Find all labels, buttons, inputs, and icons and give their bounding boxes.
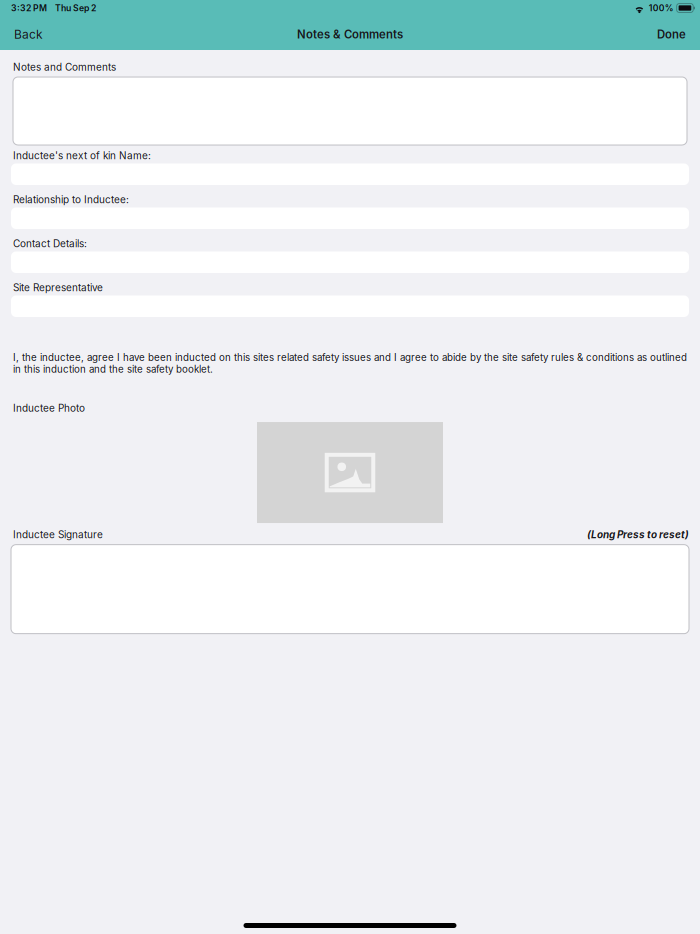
button[interactable]: Done — [643, 19, 700, 50]
button[interactable]: Inductee signature pad — [0, 545, 700, 634]
button[interactable]: Take inductee photo — [257, 422, 443, 523]
staticText: Inductee Photo — [13, 402, 85, 414]
staticText: Inductee's next of kin Name: — [13, 149, 151, 162]
staticText: 3:32 PM — [11, 3, 47, 13]
staticText: Relationship to Inductee: — [13, 193, 129, 206]
staticText: Notes & Comments — [297, 28, 403, 41]
staticText: Site Representative — [13, 281, 103, 294]
staticText: Contact Details: — [13, 237, 87, 250]
button[interactable] — [0, 77, 700, 145]
staticText: Back — [14, 27, 43, 42]
staticText: (Long Press to reset) — [587, 529, 689, 541]
staticText: Notes and Comments — [13, 61, 116, 73]
staticText: Done — [657, 28, 686, 41]
staticText: Thu Sep 2 — [55, 3, 96, 13]
button[interactable]: Back — [0, 19, 57, 50]
staticText: 100% — [649, 3, 674, 13]
staticText: Inductee Signature — [13, 529, 103, 541]
staticText: I, the inductee, agree I have been induc… — [13, 351, 687, 375]
